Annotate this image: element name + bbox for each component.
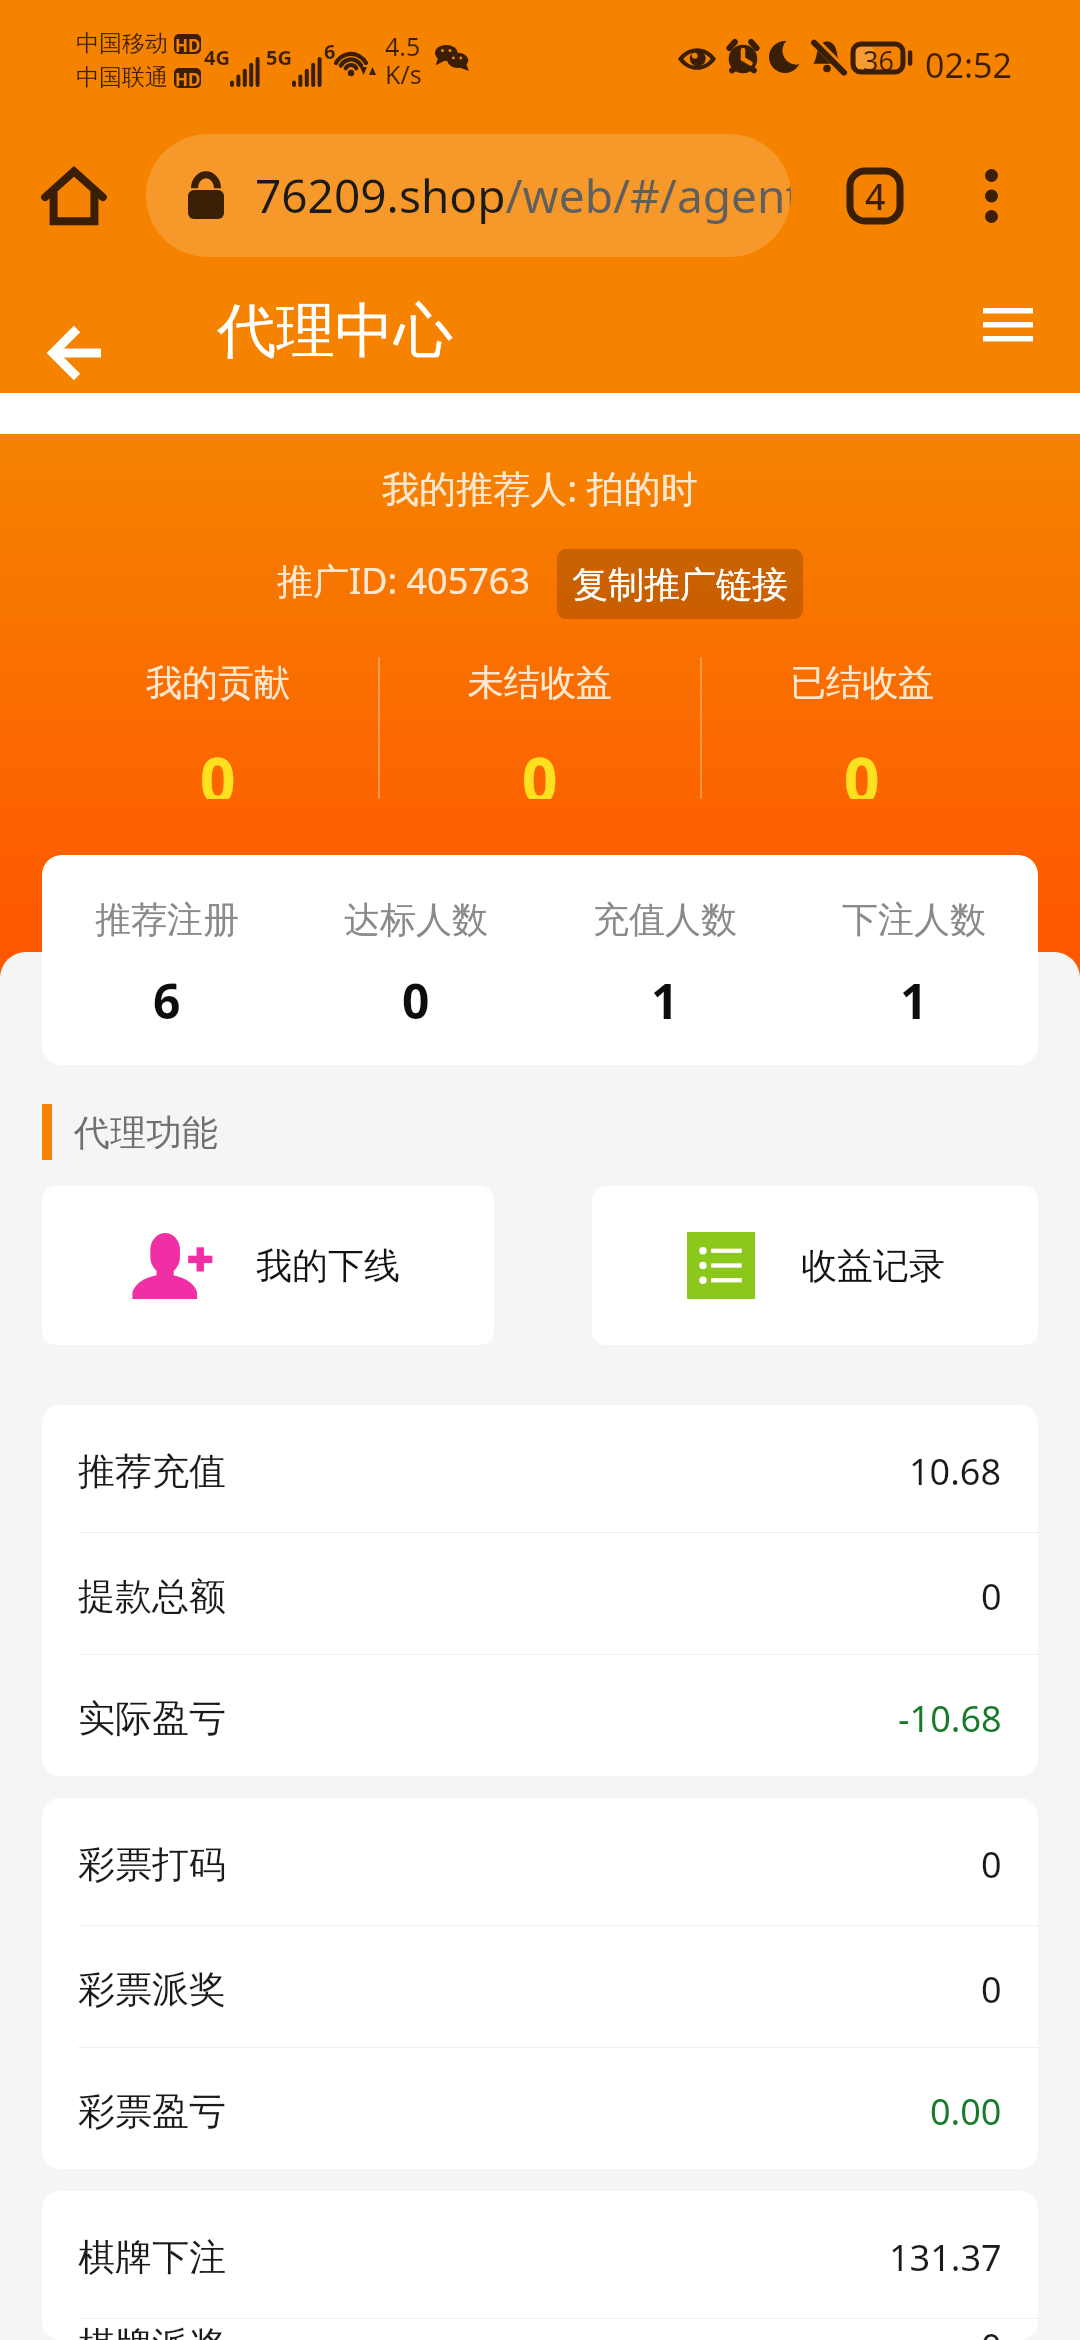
staticText: 推荐注册	[95, 897, 239, 942]
staticText: 中国联通	[76, 63, 168, 92]
button[interactable]: Menu	[958, 288, 1058, 374]
staticText: 36	[863, 42, 894, 74]
staticText: 0	[981, 1840, 1002, 1889]
staticText: -10.68	[898, 1694, 1002, 1743]
button[interactable]: 复制推广链接	[557, 549, 803, 619]
button[interactable]: Back	[22, 293, 122, 369]
staticText: 下注人数	[842, 897, 986, 942]
staticText: 棋牌下注	[78, 2234, 226, 2281]
staticText: 76209.shop/web/#/agent	[255, 164, 791, 227]
staticText: 4G	[204, 44, 230, 71]
staticText: 6	[324, 38, 336, 65]
staticText: 我的下线	[256, 1243, 400, 1288]
button[interactable]: 彩票盈亏	[42, 2048, 1038, 2169]
staticText: 彩票打码	[78, 1841, 226, 1888]
staticText: 实际盈亏	[78, 1695, 226, 1742]
button[interactable]: Tabs	[837, 158, 913, 234]
button[interactable]: 提款总额	[42, 1533, 1038, 1654]
staticText: 4.5	[385, 29, 421, 63]
staticText: 代理功能	[74, 1110, 218, 1155]
staticText: 02:52	[925, 42, 1012, 88]
staticText: 1	[900, 968, 928, 1033]
staticText: 达标人数	[344, 897, 488, 942]
staticText: 4	[865, 172, 886, 221]
staticText: 0	[981, 2322, 1002, 2340]
staticText: 复制推广链接	[572, 562, 788, 607]
staticText: 0	[981, 1572, 1002, 1621]
button[interactable]: 棋牌下注	[42, 2191, 1038, 2318]
staticText: 棋牌派奖	[78, 2322, 226, 2340]
staticText: HD	[175, 34, 201, 54]
button[interactable]: 棋牌派奖	[42, 2319, 1038, 2340]
staticText: 6	[153, 968, 181, 1033]
staticText: 收益记录	[801, 1243, 945, 1288]
button[interactable]: 彩票派奖	[42, 1926, 1038, 2047]
staticText: 未结收益	[468, 660, 612, 705]
button[interactable]: Home	[34, 156, 114, 236]
button[interactable]: 76209.shop/web/#/agent	[146, 134, 791, 257]
staticText: HD	[175, 68, 201, 88]
staticText: 0	[200, 737, 236, 799]
staticText: 代理中心	[217, 294, 453, 368]
button[interactable]: 推荐充值	[42, 1405, 1038, 1532]
button[interactable]: 实际盈亏	[42, 1655, 1038, 1776]
staticText: 0	[402, 968, 430, 1033]
button[interactable]: 收益记录	[592, 1186, 1038, 1345]
staticText: 已结收益	[790, 660, 934, 705]
button[interactable]: 我的下线	[42, 1186, 494, 1345]
staticText: 131.37	[889, 2233, 1002, 2282]
staticText: 1	[651, 968, 679, 1033]
staticText: 推广ID: 405763	[277, 556, 531, 605]
staticText: 0	[981, 1965, 1002, 2014]
staticText: 0	[522, 737, 558, 799]
staticText: 彩票盈亏	[78, 2088, 226, 2135]
staticText: 10.68	[909, 1447, 1002, 1496]
staticText: 0.00	[930, 2087, 1002, 2136]
staticText: 我的推荐人: 拍的时	[0, 462, 1080, 513]
button[interactable]: 彩票打码	[42, 1798, 1038, 1925]
button[interactable]: More options	[956, 161, 1026, 231]
staticText: 提款总额	[78, 1573, 226, 1620]
staticText: 中国移动	[76, 29, 168, 58]
staticText: 5G	[266, 44, 292, 71]
staticText: 0	[844, 737, 880, 799]
staticText: 推荐充值	[78, 1448, 226, 1495]
staticText: K/s	[385, 57, 422, 91]
staticText: 彩票派奖	[78, 1966, 226, 2013]
staticText: 充值人数	[593, 897, 737, 942]
staticText: 我的贡献	[146, 660, 290, 705]
